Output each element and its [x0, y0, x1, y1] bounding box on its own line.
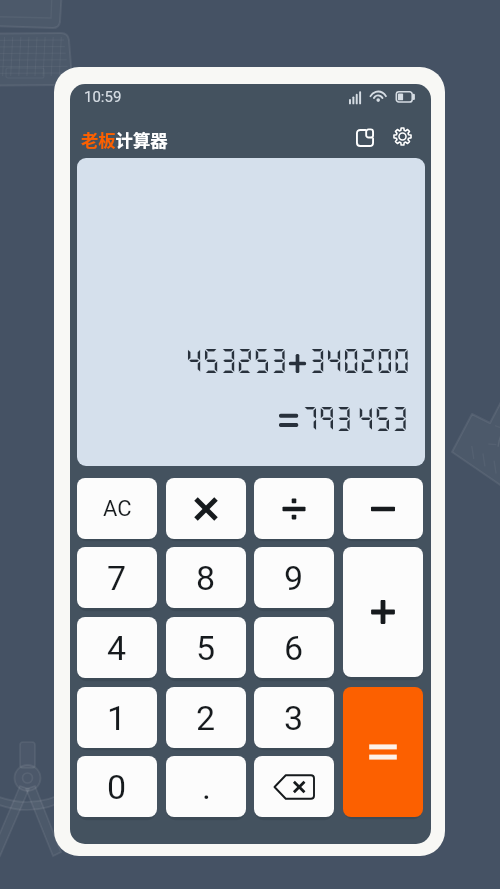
staticText: 3: [284, 698, 304, 738]
staticText: .: [202, 767, 211, 807]
button[interactable]: 6: [254, 617, 334, 678]
button[interactable]: 0: [77, 756, 157, 817]
staticText: 340200: [307, 345, 409, 376]
button[interactable]: Plus: [343, 547, 423, 677]
button[interactable]: Backspace: [254, 756, 334, 817]
staticText: 453253: [184, 345, 286, 376]
button[interactable]: 1: [77, 687, 157, 748]
staticText: 9: [284, 558, 304, 598]
button[interactable]: 9: [254, 547, 334, 608]
staticText: 4: [107, 628, 127, 668]
button[interactable]: 5: [166, 617, 246, 678]
staticText: 0: [107, 767, 127, 807]
staticText: 7: [107, 558, 127, 598]
button[interactable]: 3: [254, 687, 334, 748]
staticText: 1: [107, 698, 127, 738]
button[interactable]: 2: [166, 687, 246, 748]
staticText: 793: [300, 403, 351, 434]
button[interactable]: .: [166, 756, 246, 817]
button[interactable]: Floating window: [347, 120, 382, 155]
button[interactable]: 4: [77, 617, 157, 678]
button[interactable]: AC: [77, 478, 157, 539]
staticText: 5: [196, 628, 216, 668]
button[interactable]: 7: [77, 547, 157, 608]
staticText: 2: [196, 698, 216, 738]
staticText: 8: [196, 558, 216, 598]
staticText: 6: [284, 628, 304, 668]
staticText: 老板计算器: [81, 127, 168, 152]
button[interactable]: 8: [166, 547, 246, 608]
button[interactable]: Settings: [385, 119, 420, 154]
button[interactable]: Divide: [254, 478, 334, 539]
button[interactable]: Minus: [343, 478, 423, 539]
button[interactable]: Equals: [343, 687, 423, 817]
staticText: 453: [356, 403, 407, 434]
staticText: AC: [103, 496, 132, 522]
button[interactable]: Multiply: [166, 478, 246, 539]
staticText: 10:59: [84, 88, 122, 106]
